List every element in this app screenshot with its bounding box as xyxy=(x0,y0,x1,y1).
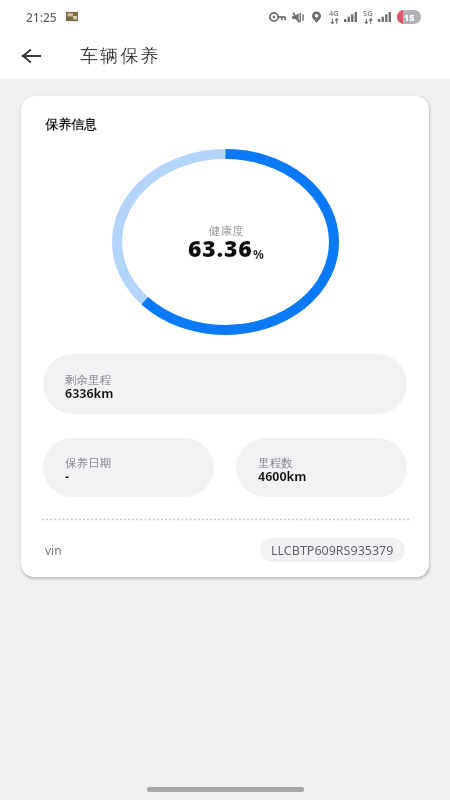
staticText: 保养信息 xyxy=(45,116,97,132)
staticText: 保养日期 xyxy=(65,456,111,470)
staticText: - xyxy=(65,468,70,485)
staticText: vin xyxy=(45,542,62,558)
staticText: 剩余里程 xyxy=(65,373,111,387)
button[interactable]: LLCBTP609RS935379 xyxy=(260,538,405,562)
button[interactable]: 保养日期 xyxy=(43,438,214,497)
staticText: 4600km xyxy=(258,468,307,485)
staticText: 里程数 xyxy=(258,456,293,470)
staticText: 车辆保养 xyxy=(80,45,161,68)
staticText: 63.36 xyxy=(188,232,253,263)
button[interactable]: 里程数 xyxy=(236,438,407,497)
staticText: % xyxy=(253,246,264,262)
staticText: 21:25 xyxy=(26,9,57,25)
staticText: 15 xyxy=(404,11,415,23)
staticText: 4G xyxy=(329,8,339,18)
staticText: 5G xyxy=(363,8,373,18)
button[interactable]: Back xyxy=(0,33,62,79)
staticText: 6336km xyxy=(65,385,114,402)
staticText: 健康度 xyxy=(209,224,244,238)
staticText: LLCBTP609RS935379 xyxy=(271,542,394,559)
button[interactable]: 剩余里程 xyxy=(43,354,407,414)
